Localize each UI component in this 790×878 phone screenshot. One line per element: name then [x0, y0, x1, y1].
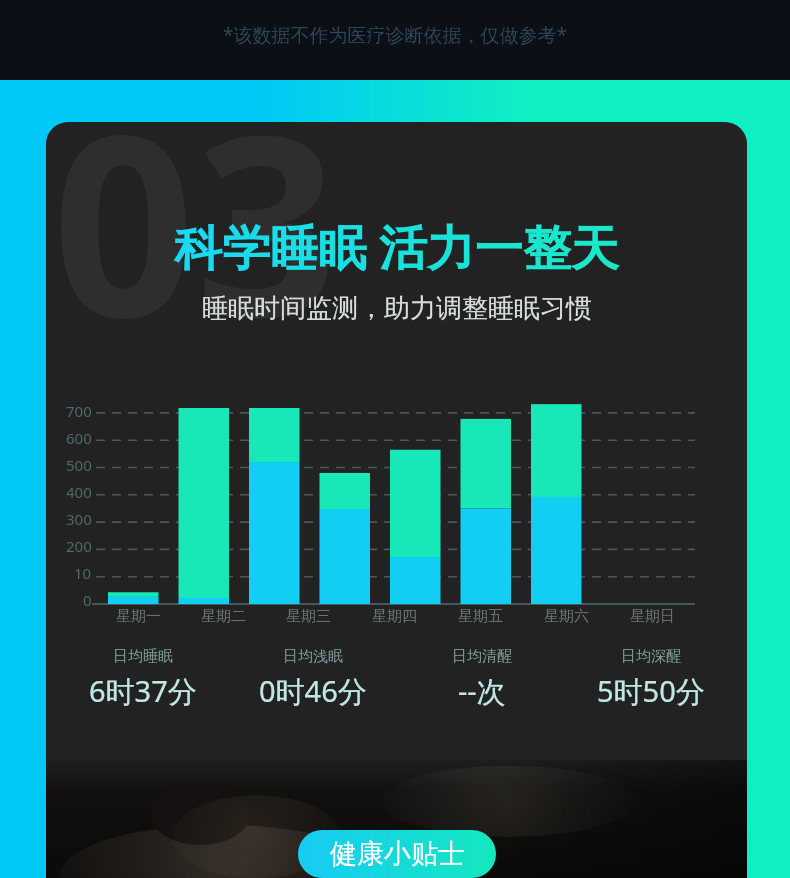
staticText: 0	[83, 590, 92, 610]
button[interactable]: 日均睡眠	[58, 647, 228, 711]
staticText: 0时46分	[259, 671, 367, 711]
button[interactable]: 日均浅眠	[228, 647, 397, 711]
staticText: 睡眠时间监测，助力调整睡眠习惯	[202, 292, 592, 325]
staticText: 星期二	[201, 607, 246, 626]
staticText: 日均清醒	[452, 647, 512, 666]
staticText: 03	[52, 122, 338, 391]
staticText: 星期一	[116, 607, 161, 626]
staticText: 日均浅眠	[283, 647, 343, 666]
button[interactable]: 健康小贴士	[298, 830, 496, 878]
button[interactable]: 日均清醒	[397, 647, 566, 711]
staticText: 10	[74, 563, 92, 583]
staticText: 6时37分	[89, 671, 197, 711]
staticText: --次	[458, 671, 506, 711]
staticText: *该数据不作为医疗诊断依据，仅做参考*	[223, 22, 567, 48]
staticText: 700	[66, 401, 92, 421]
staticText: 星期三	[286, 607, 331, 626]
staticText: 星期五	[458, 607, 503, 626]
staticText: 300	[66, 509, 92, 529]
staticText: 200	[66, 536, 92, 556]
button[interactable]: 日均深醒	[566, 647, 735, 711]
staticText: 500	[66, 455, 92, 475]
staticText: 星期四	[372, 607, 417, 626]
staticText: 600	[66, 428, 92, 448]
staticText: 星期六	[544, 607, 589, 626]
staticText: 星期日	[630, 607, 675, 626]
staticText: 科学睡眠 活力一整天	[174, 214, 619, 280]
staticText: 健康小贴士	[330, 837, 465, 871]
staticText: 400	[66, 482, 92, 502]
staticText: 5时50分	[597, 671, 705, 711]
staticText: 日均睡眠	[113, 647, 173, 666]
staticText: 日均深醒	[621, 647, 681, 666]
